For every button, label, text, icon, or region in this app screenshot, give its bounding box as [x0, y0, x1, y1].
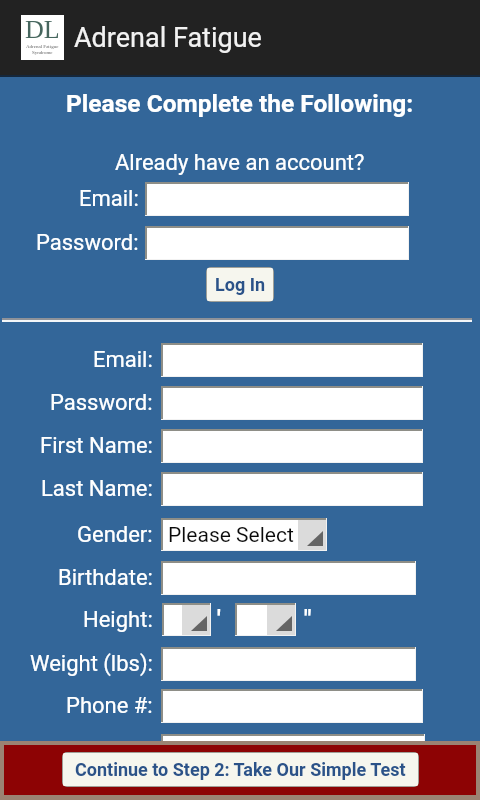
staticText: Please Complete the Following:	[66, 89, 414, 118]
staticText: Weight (lbs):	[30, 651, 153, 677]
button[interactable]	[163, 736, 424, 749]
staticText: Password:	[50, 390, 153, 416]
staticText: DL	[25, 15, 60, 44]
button[interactable]: Please Select	[163, 520, 326, 550]
staticText: Continue to Step 2: Take Our Simple Test	[75, 759, 406, 780]
staticText: Email:	[93, 347, 153, 373]
staticText: Gender:	[77, 522, 153, 548]
staticText: Password:	[36, 230, 139, 256]
button[interactable]: Log In	[207, 268, 273, 301]
staticText: Please Select	[168, 523, 294, 548]
button[interactable]: Height inches	[237, 605, 295, 635]
staticText: Phone #:	[66, 693, 153, 719]
staticText: Syndrome	[32, 50, 53, 56]
staticText: Email:	[79, 186, 139, 212]
staticText: Last Name:	[41, 476, 153, 502]
staticText: '	[217, 606, 221, 633]
staticText: First Name:	[40, 433, 153, 459]
staticText: Adrenal Fatigue	[26, 44, 59, 50]
button[interactable]: Adrenal Fatigue home	[21, 15, 64, 60]
staticText: Adrenal Fatigue	[74, 22, 262, 54]
staticText: Already have an account?	[115, 150, 365, 176]
button[interactable]: Height feet	[164, 605, 210, 635]
staticText: "	[304, 606, 312, 633]
staticText: Birthdate:	[58, 565, 153, 591]
staticText: Height:	[83, 607, 153, 633]
button[interactable]: Continue to Step 2: Take Our Simple Test	[63, 753, 418, 786]
staticText: Log In	[215, 274, 266, 295]
